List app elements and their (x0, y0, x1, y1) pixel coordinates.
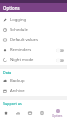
button[interactable]: Notes (36, 107, 48, 119)
button[interactable]: Logging (0, 15, 67, 25)
staticText: Archive (10, 88, 25, 94)
staticText: Schedule (10, 27, 28, 33)
button[interactable]: Home (0, 107, 12, 119)
staticText: Options (52, 114, 63, 118)
staticText: Support us (3, 101, 22, 106)
staticText: Logging (10, 17, 27, 23)
button[interactable]: Reminders (0, 45, 67, 55)
staticText: Backup (10, 78, 25, 84)
staticText: Options (3, 5, 20, 11)
button[interactable]: Default values (0, 35, 67, 45)
staticText: Reminders (10, 47, 32, 53)
button[interactable]: Schedule (0, 25, 67, 35)
button[interactable]: Backup (0, 76, 67, 86)
button[interactable]: Stats (12, 107, 24, 119)
button[interactable]: Archive (0, 86, 67, 96)
staticText: Data (3, 70, 12, 75)
staticText: Night mode (10, 57, 34, 63)
button[interactable]: Night mode (0, 55, 67, 65)
button[interactable]: Options (48, 107, 67, 119)
staticText: Default values (10, 37, 38, 43)
button[interactable]: Calendar (24, 107, 36, 119)
